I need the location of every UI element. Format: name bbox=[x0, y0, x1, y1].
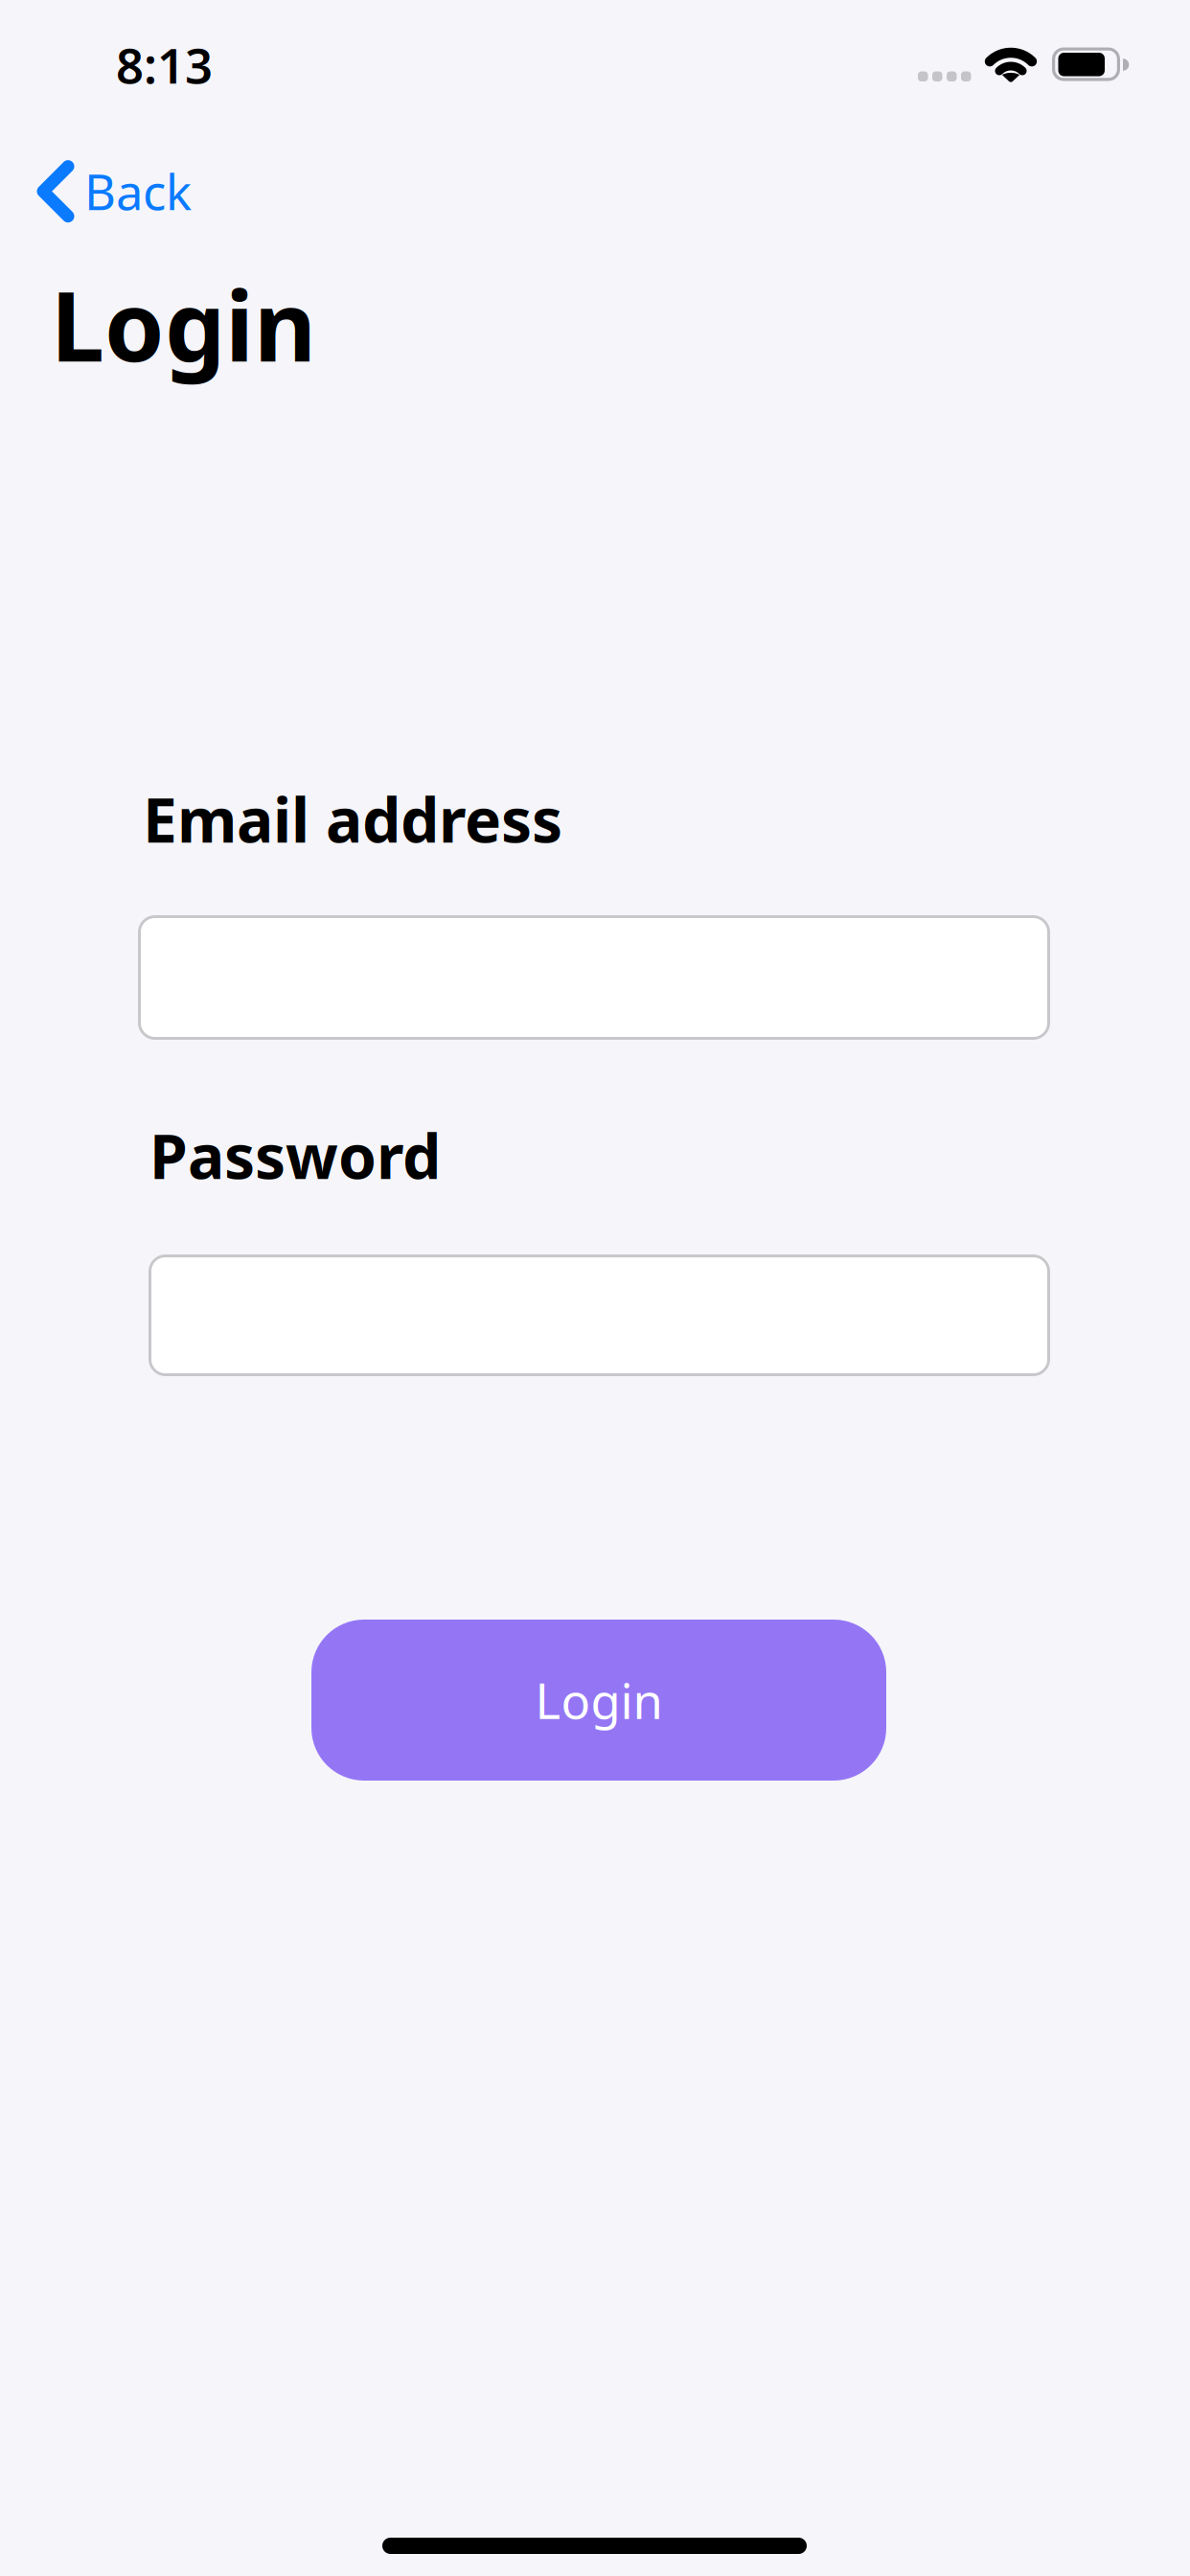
button[interactable]: Back bbox=[36, 159, 192, 224]
staticText: Login bbox=[51, 261, 316, 388]
staticText: Password bbox=[149, 1115, 441, 1196]
staticText: Email address bbox=[143, 778, 562, 860]
staticText: Login bbox=[535, 1668, 663, 1732]
button[interactable]: Login bbox=[311, 1620, 886, 1781]
staticText: Back bbox=[84, 159, 192, 224]
staticText: 8:13 bbox=[116, 33, 213, 97]
